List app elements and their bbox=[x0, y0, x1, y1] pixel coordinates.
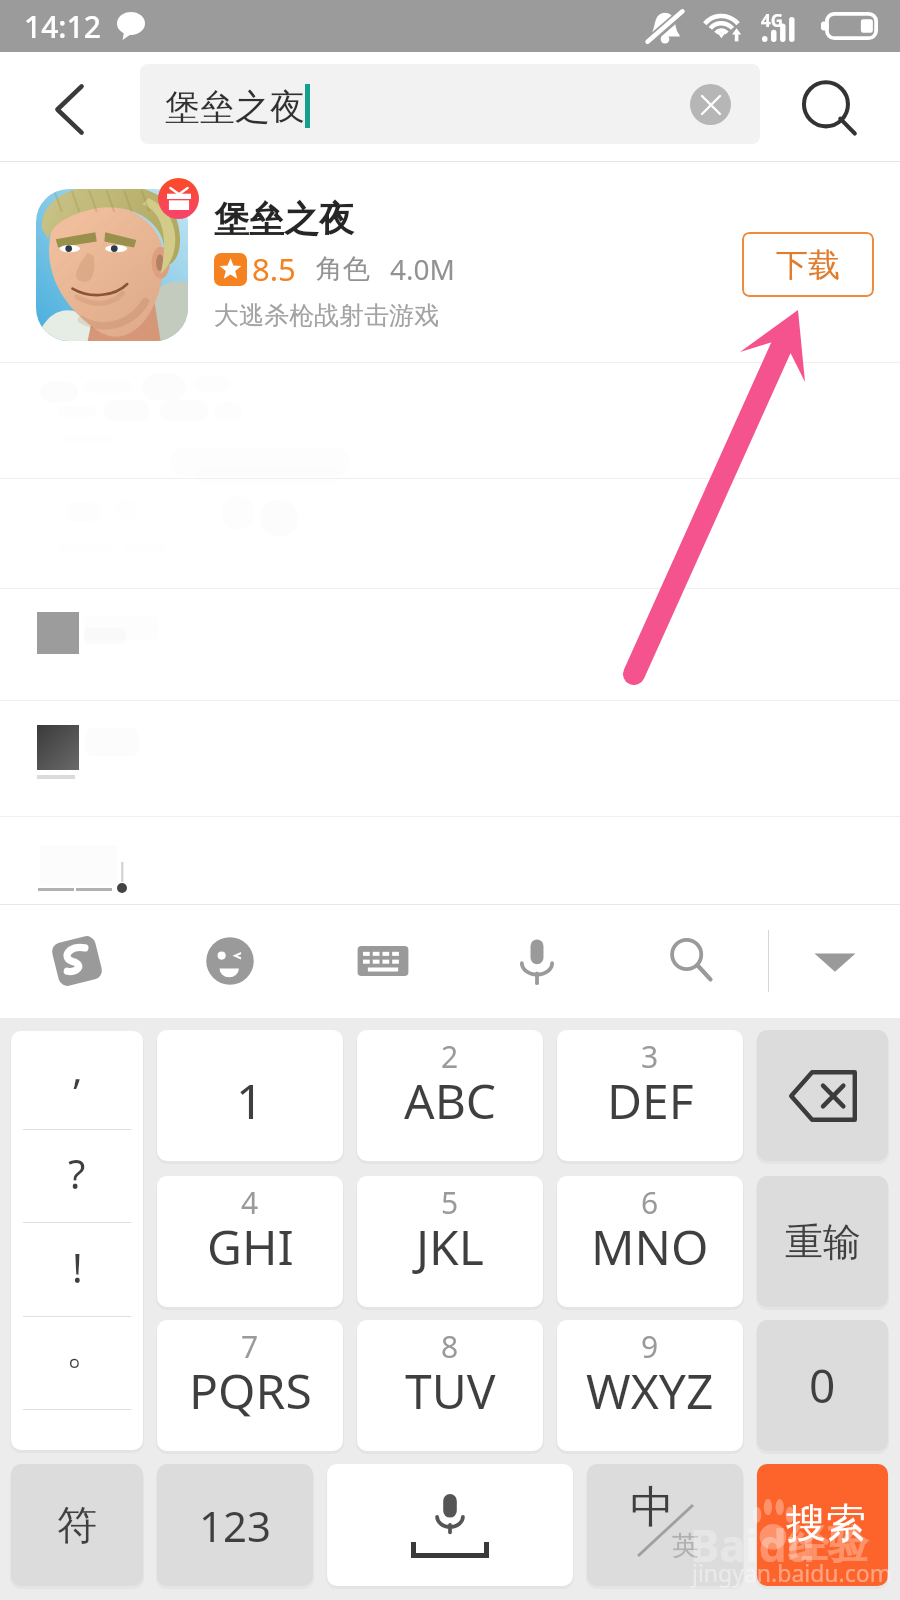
staticText: 下载 bbox=[776, 245, 840, 285]
staticText: 重输 bbox=[785, 1218, 861, 1266]
staticText: 0 bbox=[809, 1354, 836, 1417]
staticText: 2 bbox=[441, 1036, 459, 1077]
staticText: 14:12 bbox=[24, 6, 101, 47]
button[interactable]: 搜索 bbox=[757, 1464, 888, 1586]
button[interactable]: Voice input bbox=[460, 904, 614, 1018]
button[interactable]: WXYZ bbox=[557, 1320, 743, 1451]
button[interactable]: Emoji bbox=[153, 904, 306, 1018]
staticText: 角色 bbox=[316, 252, 370, 286]
staticText: 4G bbox=[761, 9, 784, 32]
staticText: GHI bbox=[207, 1214, 294, 1279]
button[interactable]: JKL bbox=[357, 1176, 543, 1307]
staticText: 4.0M bbox=[390, 250, 455, 288]
staticText: 7 bbox=[241, 1326, 259, 1367]
staticText: PQRS bbox=[189, 1358, 312, 1423]
staticText: 8 bbox=[441, 1326, 459, 1367]
button[interactable]: Punctuation bbox=[11, 1031, 143, 1450]
button[interactable]: 中 / 英 bbox=[587, 1464, 743, 1586]
button[interactable]: 123 bbox=[157, 1464, 313, 1586]
button[interactable]: Hide keyboard bbox=[769, 904, 900, 1018]
staticText: 英 bbox=[672, 1529, 699, 1563]
button[interactable]: 重输 bbox=[757, 1176, 888, 1307]
staticText: JKL bbox=[416, 1214, 484, 1279]
staticText: 。 bbox=[66, 1324, 106, 1374]
button[interactable]: TUV bbox=[357, 1320, 543, 1451]
staticText: 9 bbox=[641, 1326, 659, 1367]
button[interactable]: Search settings bbox=[614, 904, 768, 1018]
staticText: 3 bbox=[641, 1036, 659, 1077]
staticText: TUV bbox=[405, 1358, 496, 1423]
staticText: , bbox=[72, 1041, 83, 1095]
staticText: 1 bbox=[236, 1068, 264, 1133]
button[interactable]: 下载 bbox=[742, 232, 874, 297]
button[interactable]: PQRS bbox=[157, 1320, 343, 1451]
button[interactable]: Sogou input method bbox=[0, 904, 153, 1018]
button[interactable]: Backspace bbox=[757, 1030, 888, 1161]
staticText: DEF bbox=[607, 1068, 694, 1133]
staticText: 大逃杀枪战射击游戏 bbox=[214, 300, 439, 331]
staticText: 中 bbox=[630, 1480, 674, 1535]
staticText: 6 bbox=[641, 1182, 659, 1223]
button[interactable]: 堡垒之夜 app result bbox=[0, 156, 900, 362]
staticText: MNO bbox=[591, 1214, 709, 1279]
staticText: 搜索 bbox=[786, 1498, 866, 1548]
staticText: 符 bbox=[57, 1500, 97, 1550]
staticText: Baidu bbox=[690, 1515, 816, 1575]
button[interactable]: 1 bbox=[157, 1030, 343, 1161]
button[interactable]: GHI bbox=[157, 1176, 343, 1307]
button[interactable]: Space bbox=[327, 1464, 573, 1586]
staticText: ? bbox=[68, 1146, 86, 1200]
button[interactable]: Back bbox=[0, 52, 120, 156]
button[interactable]: Search bbox=[760, 52, 900, 156]
button[interactable]: Clear text bbox=[690, 84, 731, 125]
button[interactable]: 0 bbox=[757, 1320, 888, 1451]
staticText: 123 bbox=[199, 1497, 272, 1554]
staticText: ABC bbox=[404, 1068, 497, 1133]
staticText: 5 bbox=[441, 1182, 459, 1223]
button[interactable]: DEF bbox=[557, 1030, 743, 1161]
button[interactable]: ABC bbox=[357, 1030, 543, 1161]
staticText: jingyan.baidu.com bbox=[692, 1557, 892, 1588]
button[interactable]: MNO bbox=[557, 1176, 743, 1307]
staticText: ! bbox=[72, 1240, 83, 1294]
button[interactable]: Keyboard layout bbox=[306, 904, 460, 1018]
staticText: 堡垒之夜 bbox=[214, 197, 354, 241]
staticText: 经验 bbox=[788, 1519, 868, 1569]
staticText: 4 bbox=[241, 1182, 259, 1223]
button[interactable]: 堡垒之夜 bbox=[140, 64, 760, 144]
button[interactable]: 符 bbox=[11, 1464, 143, 1586]
staticText: 8.5 bbox=[252, 248, 296, 290]
staticText: WXYZ bbox=[586, 1358, 714, 1423]
staticText: 堡垒之夜 bbox=[165, 85, 305, 129]
